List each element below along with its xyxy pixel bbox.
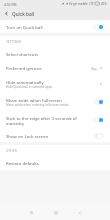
button[interactable]: Home [48, 205, 63, 220]
staticText: Hide automatically [6, 79, 44, 85]
staticText: Turn on Quick ball [6, 24, 43, 30]
staticText: LTE [89, 2, 94, 6]
staticText: 4:02 PM [4, 2, 17, 6]
button[interactable]: Stick to the edge after 3 seconds of ina… [0, 111, 110, 129]
staticText: Restore defaults [6, 160, 39, 166]
staticText: Move aside when entering fullscreen mode [6, 103, 69, 107]
button[interactable]: Switch on [94, 25, 103, 29]
button[interactable]: Navigate up [0, 7, 12, 20]
staticText: Quick ball [12, 11, 35, 17]
button[interactable]: Turn on Quick ball [0, 20, 110, 33]
button[interactable]: Show on Lock screen [0, 129, 110, 142]
staticText: Tap [91, 66, 97, 70]
button[interactable]: Preferred gesture [0, 61, 110, 74]
staticText: Stick to the edge after 3 seconds of ina… [6, 115, 91, 126]
button[interactable]: Move aside when fullscreen [0, 93, 110, 111]
staticText: Select shortcuts [6, 51, 39, 57]
staticText: OTHER [6, 149, 17, 153]
button[interactable]: Hide automatically [0, 74, 110, 93]
staticText: Preferred gesture [6, 65, 42, 71]
staticText: Virgin mobile [69, 2, 88, 6]
staticText: Hide Quick ball in selected apps [6, 85, 53, 89]
button[interactable]: Switch on [94, 100, 103, 104]
button[interactable]: Recent apps [24, 205, 39, 220]
staticText: Move aside when fullscreen [6, 97, 62, 103]
staticText: SETTINGS [6, 40, 22, 44]
staticText: 20% [101, 2, 107, 6]
button[interactable]: Switch on [94, 118, 103, 122]
staticText: Show on Lock screen [6, 133, 49, 139]
button[interactable]: Restore defaults [0, 156, 110, 170]
button[interactable]: Switch off [94, 134, 103, 138]
button[interactable]: Select shortcuts [0, 47, 110, 61]
